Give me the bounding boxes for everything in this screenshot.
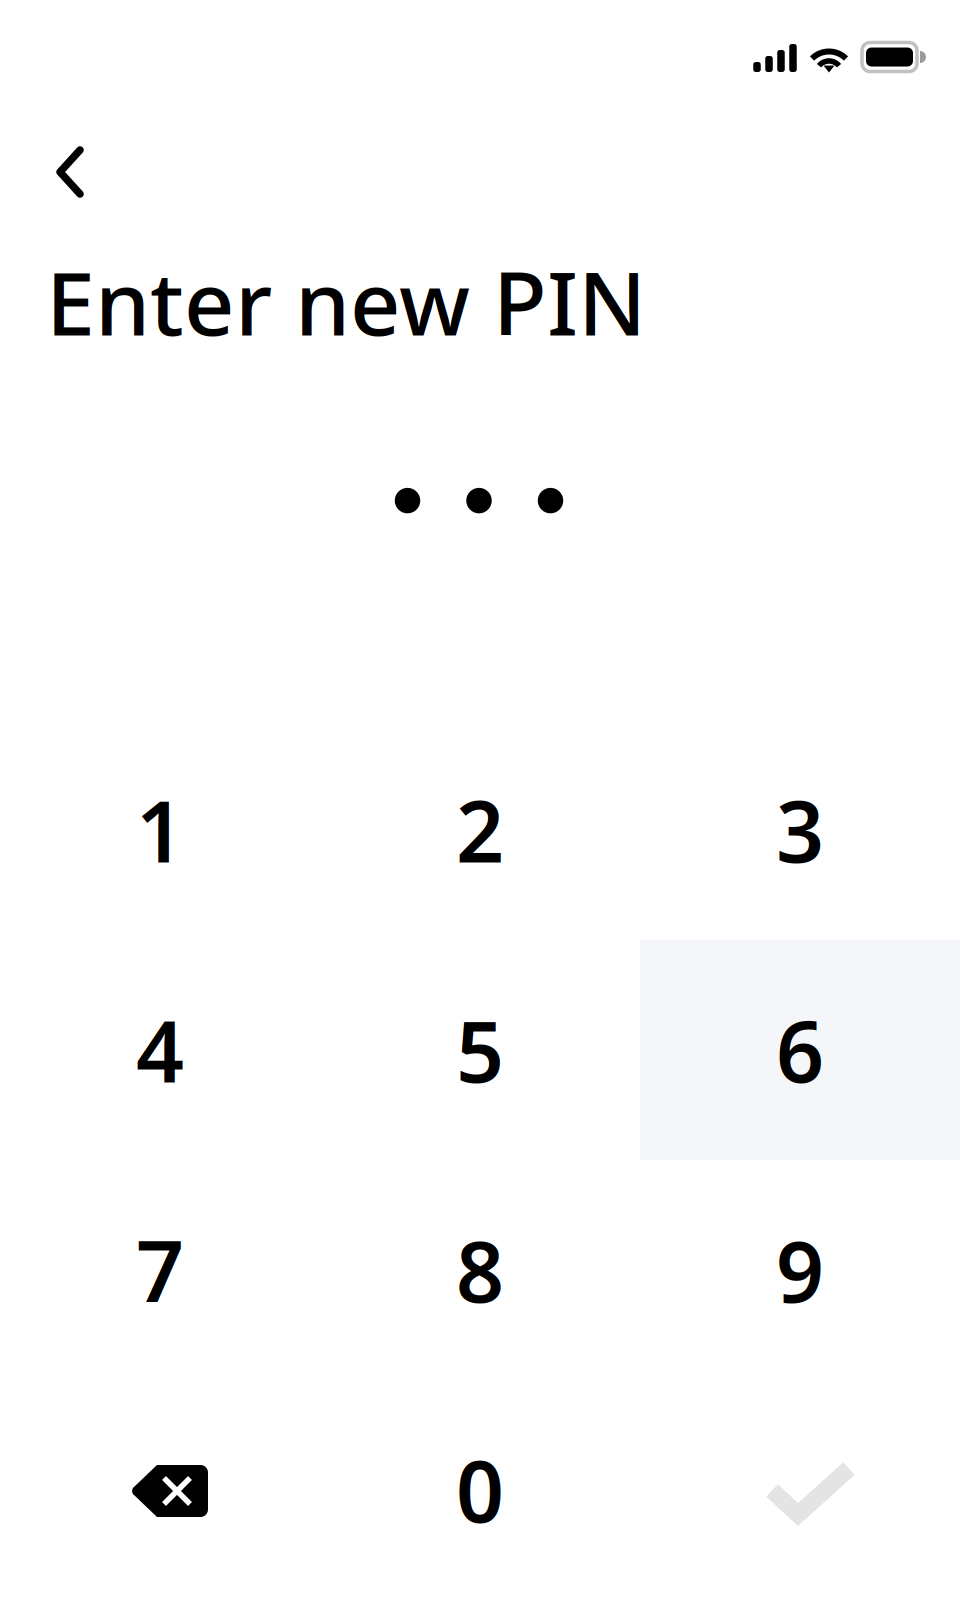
staticText: 6 [776,994,824,1106]
staticText: 2 [456,774,504,886]
staticText: 3 [776,774,824,886]
staticText: 0 [456,1434,504,1546]
staticText: 8 [456,1214,504,1326]
button[interactable]: 0 [320,1380,640,1600]
button[interactable]: 5 [320,940,640,1160]
button[interactable]: 1 [0,720,320,940]
button[interactable]: 8 [320,1160,640,1380]
button[interactable]: 6 [640,940,960,1160]
button[interactable]: Confirm [640,1380,960,1600]
button[interactable]: 9 [640,1160,960,1380]
button[interactable]: Delete [0,1380,320,1600]
button[interactable]: 7 [0,1160,320,1380]
button[interactable]: Back [0,132,110,212]
button[interactable]: 3 [640,720,960,940]
button[interactable]: 2 [320,720,640,940]
staticText: Enter new PIN [46,243,646,360]
staticText: 5 [456,994,504,1106]
staticText: 4 [136,994,184,1106]
staticText: 9 [776,1214,824,1326]
staticText: 7 [136,1214,184,1326]
button[interactable]: 4 [0,940,320,1160]
staticText: 1 [136,774,184,886]
